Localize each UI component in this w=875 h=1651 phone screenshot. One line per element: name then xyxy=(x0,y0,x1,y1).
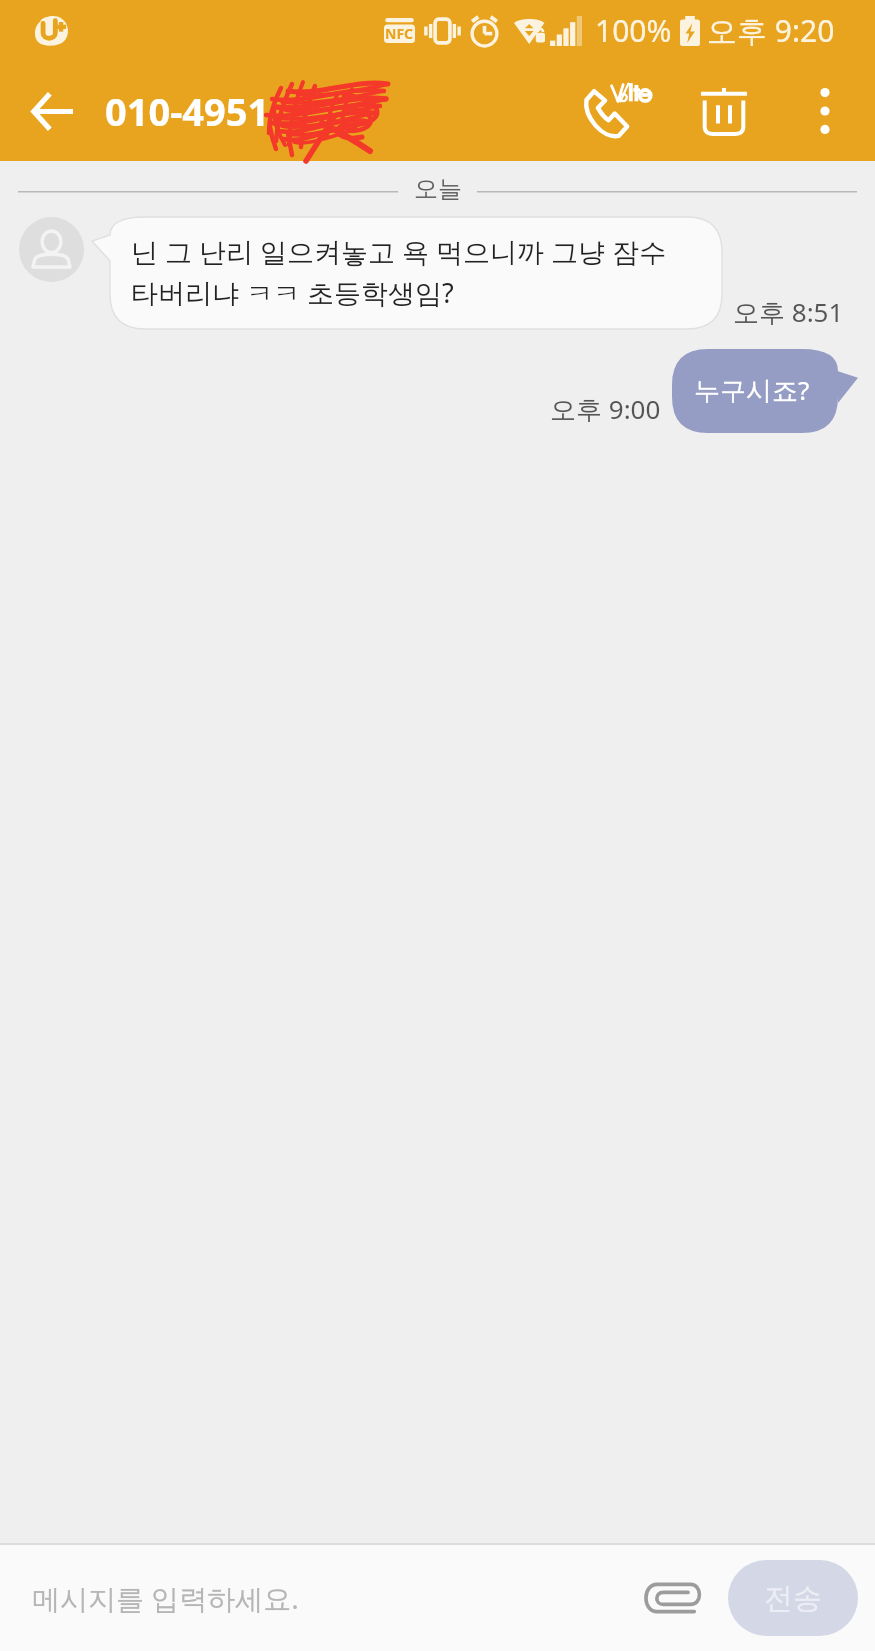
staticText: 오늘 xyxy=(414,174,462,204)
staticText: 100% xyxy=(595,10,672,51)
button[interactable]: More options xyxy=(774,61,875,161)
staticText: NFC xyxy=(385,24,414,43)
button[interactable]: 010-4951 xyxy=(105,61,555,161)
button[interactable]: Delete xyxy=(673,61,774,161)
button[interactable]: Attach file xyxy=(632,1558,712,1638)
staticText: 메시지를 입력하세요. xyxy=(32,1579,299,1617)
button[interactable]: 누구시죠? xyxy=(672,349,858,433)
staticText: 오후 9:00 xyxy=(550,391,661,427)
button[interactable]: 메시지를 입력하세요. xyxy=(32,1579,632,1617)
button[interactable]: 닌 그 난리 일으켜놓고 욕 먹으니까 그냥 잠수 타버리냐 ㅋㅋ 초등학생임? xyxy=(92,217,722,329)
staticText: 누구시죠? xyxy=(694,372,810,408)
staticText: 닌 그 난리 일으켜놓고 욕 먹으니까 그냥 잠수 타버리냐 ㅋㅋ 초등학생임? xyxy=(131,233,667,311)
staticText: 010-4951 xyxy=(105,85,270,137)
button[interactable]: Call xyxy=(555,61,673,161)
button[interactable]: 전송 xyxy=(728,1560,858,1636)
staticText: 오후 9:20 xyxy=(707,10,835,51)
staticText: 전송 xyxy=(764,1580,822,1617)
staticText: 오후 8:51 xyxy=(733,294,844,330)
button[interactable]: Back xyxy=(0,61,105,161)
button[interactable]: Contact photo xyxy=(19,217,84,282)
